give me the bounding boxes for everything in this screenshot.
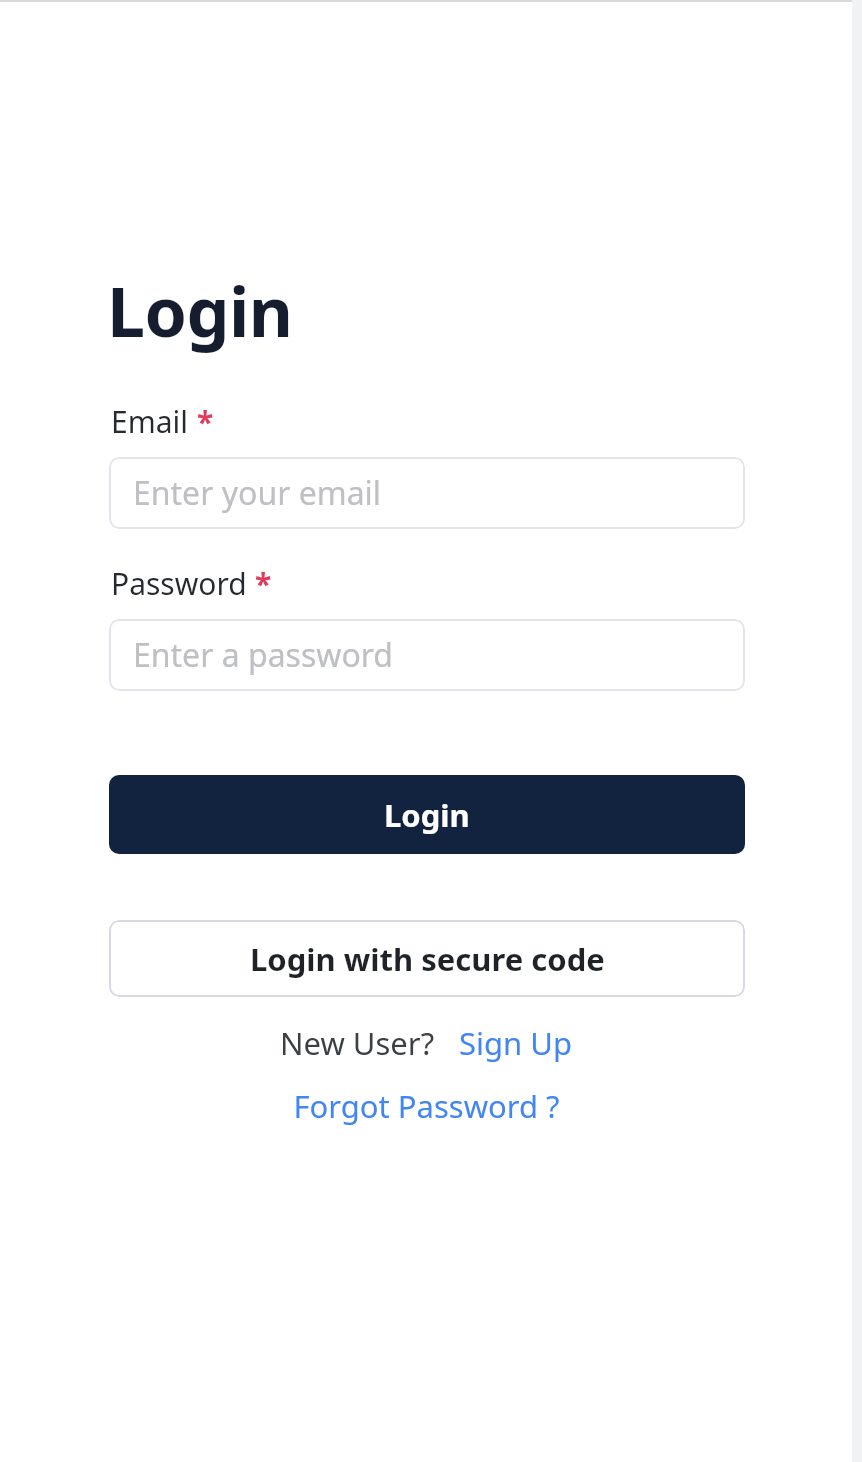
- staticText: Login: [384, 794, 470, 836]
- staticText: Password: [111, 563, 247, 604]
- staticText: Forgot Password ?: [293, 1085, 560, 1127]
- staticText: Enter your email: [133, 471, 382, 515]
- button[interactable]: Login with secure code: [109, 920, 745, 997]
- staticText: *: [197, 401, 214, 442]
- button[interactable]: Enter a password: [109, 619, 745, 691]
- staticText: Login: [107, 264, 293, 357]
- staticText: Sign Up: [459, 1022, 573, 1064]
- staticText: New User?: [280, 1022, 435, 1064]
- staticText: *: [255, 563, 272, 604]
- button[interactable]: Enter your email: [109, 457, 745, 529]
- staticText: Enter a password: [133, 633, 394, 677]
- button[interactable]: Forgot Password ?: [293, 1085, 560, 1127]
- button[interactable]: Login: [109, 775, 745, 854]
- staticText: Email: [111, 401, 189, 442]
- staticText: Login with secure code: [250, 938, 605, 980]
- button[interactable]: Sign Up: [459, 1022, 573, 1064]
